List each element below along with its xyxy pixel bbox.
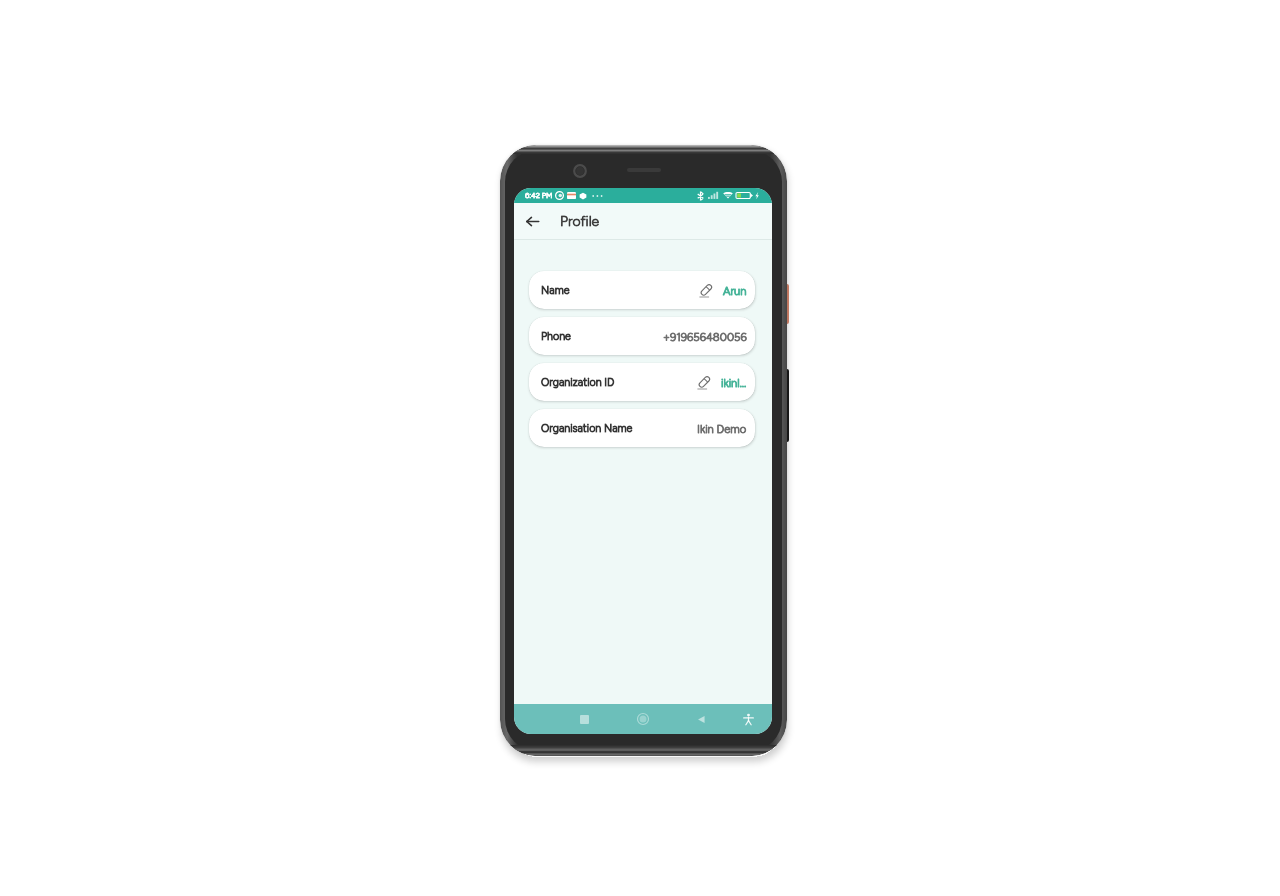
staticText: 6:42 PM — [525, 191, 553, 200]
staticText: Name — [541, 284, 570, 297]
button[interactable]: Back — [691, 709, 711, 729]
staticText: Ikin Demo — [697, 422, 747, 435]
staticText: Phone — [541, 330, 571, 343]
button[interactable]: Name — [529, 271, 755, 309]
staticText: Arun — [723, 284, 747, 297]
button[interactable]: Accessibility — [738, 709, 758, 729]
staticText: +919656480056 — [663, 330, 747, 343]
staticText: Profile — [560, 213, 600, 230]
staticText: +919656480056 — [663, 330, 747, 343]
staticText: Ikin Demo — [697, 422, 747, 435]
staticText: ikinl… — [721, 376, 747, 389]
button[interactable]: Home — [633, 709, 653, 729]
button[interactable]: Phone — [529, 317, 755, 355]
staticText: Profile — [560, 213, 600, 230]
staticText: 6:42 PM — [525, 191, 553, 200]
staticText: Name — [541, 284, 570, 297]
staticText: ikinl… — [721, 376, 747, 389]
button[interactable]: Back — [521, 210, 543, 232]
staticText: Organization ID — [541, 376, 615, 389]
button[interactable]: Recents — [574, 709, 594, 729]
staticText: Phone — [541, 330, 571, 343]
button[interactable]: Organization ID — [529, 363, 755, 401]
staticText: Arun — [723, 284, 747, 297]
staticText: Organisation Name — [541, 422, 633, 435]
staticText: Organization ID — [541, 376, 615, 389]
button[interactable]: Organisation Name — [529, 409, 755, 447]
staticText: Organisation Name — [541, 422, 633, 435]
